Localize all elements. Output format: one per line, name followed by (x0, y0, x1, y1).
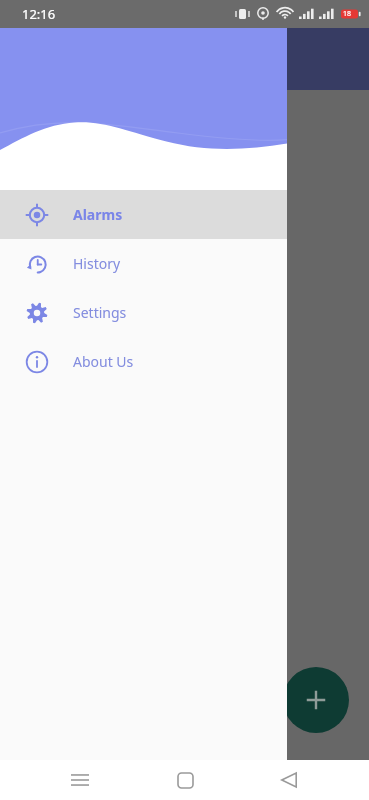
button[interactable]: Add alarm (283, 667, 349, 733)
staticText: About Us (73, 352, 134, 371)
button[interactable]: Home (161, 760, 209, 800)
staticText: History (73, 254, 121, 273)
staticText: 18 (343, 9, 352, 19)
button[interactable]: Recent apps (56, 760, 104, 800)
button[interactable]: About Us (0, 337, 287, 386)
staticText: Settings (73, 303, 127, 322)
button[interactable]: Alarms (0, 190, 287, 239)
staticText: 12:16 (22, 5, 56, 23)
button[interactable]: History (0, 239, 287, 288)
staticText: Alarms (73, 205, 123, 224)
button[interactable]: Back (265, 760, 313, 800)
button[interactable]: Settings (0, 288, 287, 337)
